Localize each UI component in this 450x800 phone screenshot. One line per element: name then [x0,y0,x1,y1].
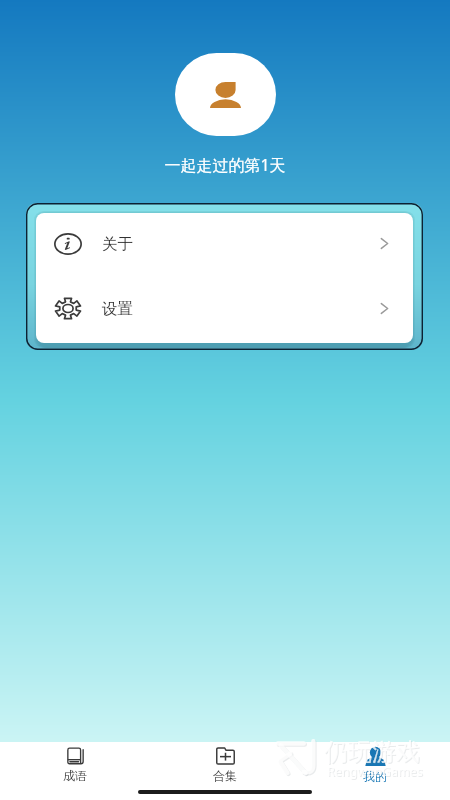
button[interactable]: 关于 [36,213,413,278]
button[interactable]: 我的 [300,742,450,784]
button[interactable]: 设置 [36,278,413,343]
staticText: 成语 [63,768,87,783]
staticText: 我的 [363,769,387,784]
staticText: 仍玩游戏 [325,738,421,768]
button[interactable]: Profile avatar [175,53,276,136]
button[interactable]: 合集 [150,742,300,783]
staticText: 仍玩游戏 [324,737,420,767]
staticText: 合集 [213,768,237,783]
staticText: RengwanGames [327,763,423,780]
staticText: 关于 [102,234,133,254]
staticText: 设置 [102,299,133,319]
staticText: RengwanGames [328,764,424,781]
button[interactable]: 成语 [0,742,150,783]
staticText: 一起走过的第1天 [164,154,286,176]
